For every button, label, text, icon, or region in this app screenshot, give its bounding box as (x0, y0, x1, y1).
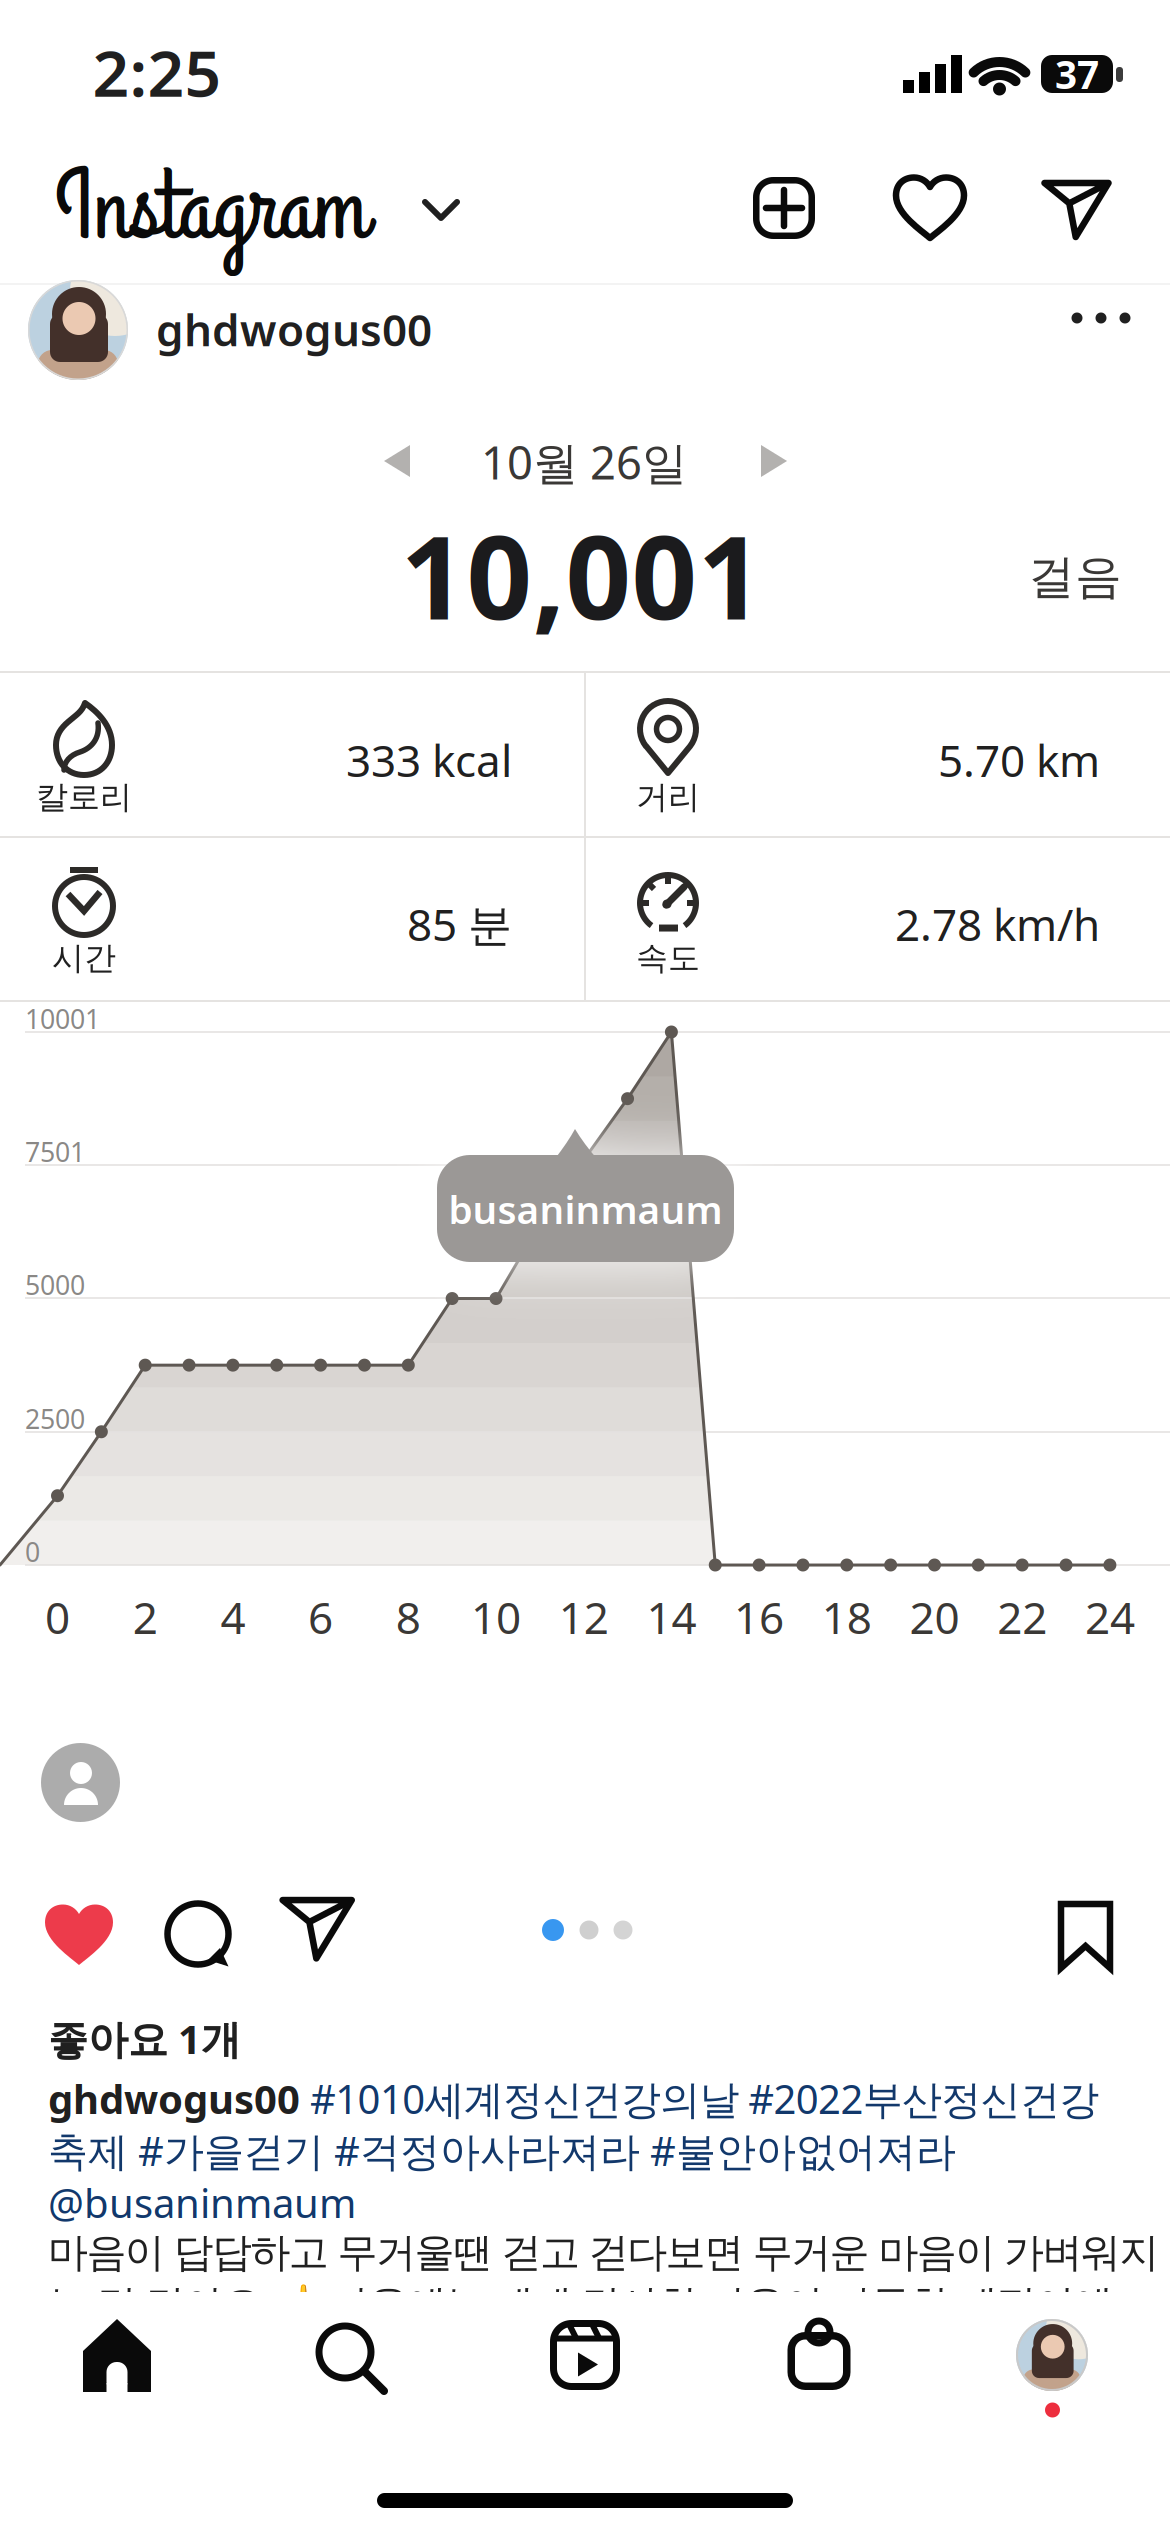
staticText: 7501 (25, 1134, 85, 1169)
staticText: 14 (646, 1588, 696, 1646)
staticText: 칼로리 (36, 777, 132, 817)
staticText: 10,001 (400, 499, 763, 651)
staticText: Instagram (55, 142, 368, 276)
staticText: 10월 26일 (481, 432, 687, 492)
staticText: 좋아요 1개 (48, 2012, 241, 2065)
staticText: 20 (909, 1588, 959, 1646)
staticText: ghdwogus00 (156, 300, 432, 358)
button[interactable]: Messages (1038, 171, 1112, 245)
button[interactable]: More options (1056, 288, 1146, 348)
staticText: ghdwogus00 (48, 2072, 310, 2125)
staticText: 속도 (636, 938, 700, 978)
staticText: 18 (822, 1588, 872, 1646)
staticText: 는 것 같아요 ☝️ 가을에는 제게 감사한 마음이 가득한 계절이에 (48, 2280, 1113, 2329)
button[interactable]: Instagram, switch feed (40, 148, 470, 266)
staticText: 5000 (25, 1267, 85, 1302)
button[interactable]: Save (1046, 1890, 1124, 1982)
staticText: 0 (25, 1534, 40, 1569)
button[interactable]: Unlike (36, 1896, 122, 1974)
staticText: 37 (1055, 48, 1099, 100)
button[interactable]: Home (69, 2307, 165, 2403)
button[interactable]: Shop (771, 2307, 867, 2403)
staticText: 걸음 (1028, 548, 1122, 606)
staticText: 2.78 km/h (895, 895, 1100, 953)
staticText: 5.70 km (938, 731, 1100, 789)
button[interactable]: ghdwogus00 (28, 280, 468, 380)
staticText: 2:25 (92, 29, 221, 114)
button[interactable]: Search (302, 2307, 398, 2403)
staticText: 85 분 (407, 895, 512, 953)
staticText: 0 (45, 1588, 70, 1646)
button[interactable]: Reels (537, 2307, 633, 2403)
button[interactable]: New post (747, 171, 821, 245)
staticText: 마음이 답답하고 무거울땐 걷고 걷다보면 무거운 마음이 가벼워지 (48, 2228, 1159, 2277)
button[interactable]: Profile (1004, 2307, 1100, 2421)
staticText: 16 (734, 1588, 784, 1646)
staticText: 시간 (52, 938, 116, 978)
staticText: #1010세계정신건강의날 #2022부산정신건강 (310, 2072, 1099, 2125)
button[interactable]: Notifications (893, 171, 967, 245)
staticText: 24 (1085, 1588, 1135, 1646)
staticText: 333 kcal (346, 731, 512, 789)
staticText: 10001 (25, 1001, 100, 1036)
button[interactable]: Comment (158, 1894, 240, 1976)
staticText: 2 (133, 1588, 158, 1646)
staticText: 거리 (636, 777, 700, 817)
staticText: 12 (559, 1588, 609, 1646)
staticText: 6 (308, 1588, 333, 1646)
staticText: 4 (220, 1588, 245, 1646)
staticText: 22 (997, 1588, 1047, 1646)
button[interactable]: Tagged users (41, 1743, 121, 1823)
staticText: 축제 #가을걷기 #걱정아사라져라 #불안아없어져라 (48, 2124, 956, 2177)
staticText: busaninmaum (448, 1183, 722, 1235)
staticText: 8 (396, 1588, 421, 1646)
button[interactable]: busaninmaum (48, 2176, 356, 2229)
staticText: 2500 (25, 1401, 85, 1436)
button[interactable]: Share (278, 1894, 360, 1972)
button[interactable]: 1 like (48, 2012, 241, 2065)
staticText: @busaninmaum (48, 2176, 356, 2229)
staticText: 10 (471, 1588, 521, 1646)
